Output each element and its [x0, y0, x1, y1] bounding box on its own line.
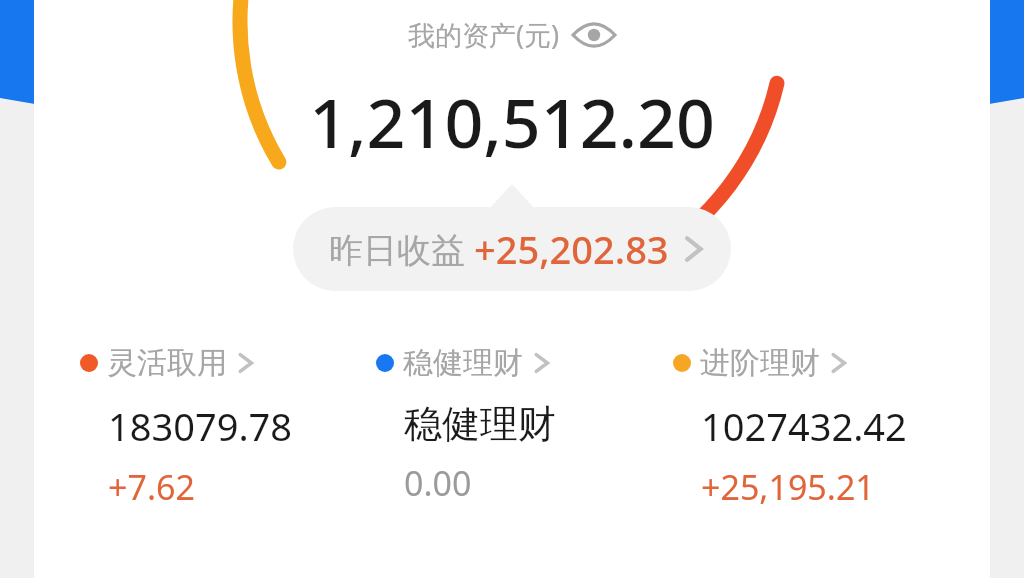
staticText: 1,210,512.20: [309, 75, 715, 168]
button[interactable]: 昨日收益: [293, 207, 731, 291]
button[interactable]: 稳健理财: [376, 344, 673, 506]
staticText: 灵活取用: [107, 344, 227, 382]
staticText: 稳健理财: [403, 344, 523, 382]
staticText: 进阶理财: [700, 344, 820, 382]
button[interactable]: 灵活取用: [80, 344, 376, 510]
staticText: +25,195.21: [701, 464, 875, 510]
staticText: 昨日收益: [329, 226, 474, 272]
staticText: 1027432.42: [701, 400, 907, 452]
staticText: +25,202.83: [474, 223, 669, 275]
staticText: 稳健理财: [404, 400, 556, 448]
staticText: 183079.78: [108, 400, 293, 452]
button[interactable]: 我的资产(元): [408, 16, 616, 53]
staticText: 我的资产(元): [408, 16, 560, 53]
staticText: 0.00: [404, 460, 472, 506]
button[interactable]: 进阶理财: [673, 344, 970, 510]
button[interactable]: 隐藏金额: [572, 21, 616, 49]
staticText: +7.62: [108, 464, 195, 510]
